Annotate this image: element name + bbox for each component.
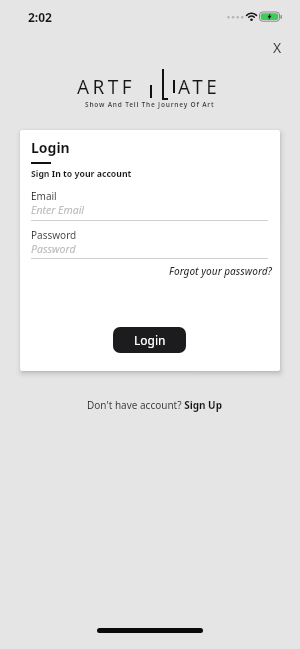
staticText: Don't have account? Sign Up bbox=[87, 398, 222, 412]
staticText: Password bbox=[31, 242, 76, 256]
staticText: Login bbox=[134, 332, 166, 348]
staticText: ARTF bbox=[77, 74, 135, 100]
staticText: Sign In to your account bbox=[31, 168, 132, 180]
staticText: ATE bbox=[178, 74, 221, 100]
staticText: 2:02 bbox=[28, 9, 52, 25]
staticText: Email bbox=[31, 189, 57, 203]
staticText: Forgot your password? bbox=[169, 264, 272, 278]
staticText: Enter Email bbox=[31, 203, 85, 217]
staticText: Show And Tell The Journey Of Art bbox=[85, 100, 215, 109]
staticText: X bbox=[273, 38, 282, 57]
staticText: Login bbox=[31, 138, 70, 157]
staticText: Password bbox=[31, 228, 77, 242]
